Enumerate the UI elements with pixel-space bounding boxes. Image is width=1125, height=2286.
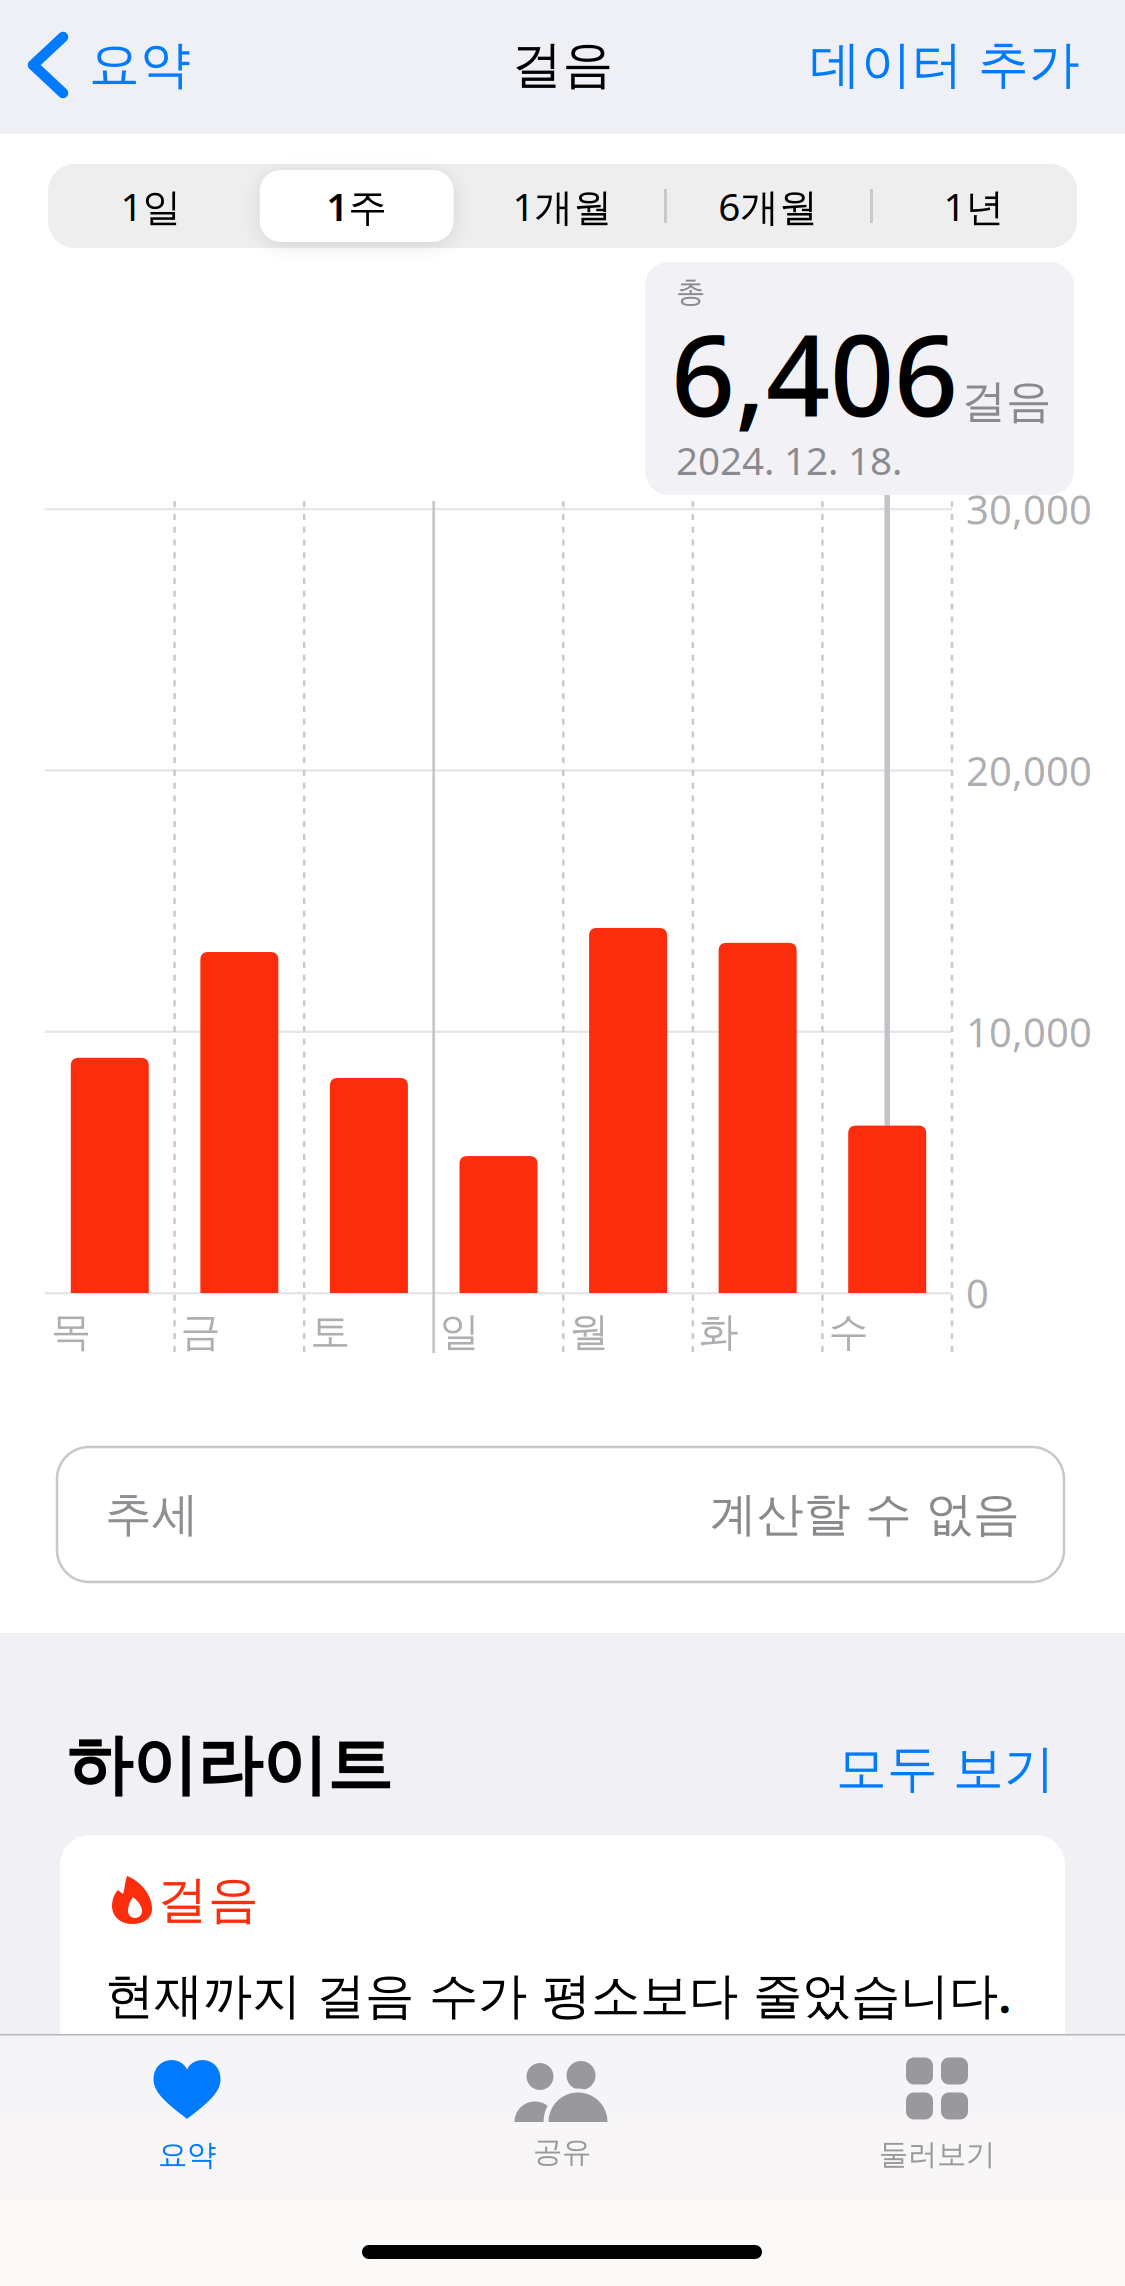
button[interactable]: 요약: [0, 2034, 200, 2146]
staticText: 걸음: [961, 373, 1051, 429]
staticText: 6개월: [718, 180, 818, 232]
staticText: 총: [676, 274, 705, 310]
staticText: 1년: [944, 180, 1005, 232]
button[interactable]: 둘러보기: [0, 2034, 200, 2148]
staticText: 1개월: [512, 180, 612, 232]
staticText: 모두 보기: [836, 1738, 1055, 1800]
button[interactable]: 1일: [48, 164, 254, 248]
button[interactable]: Back: [0, 0, 260, 58]
staticText: 하이라이트: [67, 1725, 392, 1806]
button[interactable]: 6개월: [48, 164, 254, 248]
staticText: 1주: [326, 180, 387, 232]
staticText: 계산할 수 없음: [710, 1486, 1020, 1543]
button[interactable]: 1개월: [48, 164, 254, 248]
button[interactable]: 공유: [0, 2034, 200, 2148]
staticText: 30,000: [966, 482, 1092, 536]
staticText: 둘러보기: [879, 2136, 995, 2172]
staticText: 현재까지 걸음 수가 평소보다 줄었습니다.: [105, 1961, 1012, 2027]
button[interactable]: 걸음: [60, 1835, 1065, 2255]
staticText: 요약: [158, 2137, 216, 2173]
staticText: 요약: [89, 34, 191, 96]
button[interactable]: 1주: [48, 164, 254, 248]
staticText: 금: [181, 1307, 221, 1356]
staticText: 1일: [120, 180, 181, 232]
staticText: 걸음: [157, 1869, 259, 1931]
button[interactable]: 1년: [48, 164, 254, 248]
staticText: 토: [310, 1307, 350, 1356]
staticText: 공유: [533, 2134, 591, 2170]
staticText: 월: [569, 1307, 609, 1356]
staticText: 수: [828, 1307, 868, 1356]
staticText: 0: [966, 1266, 989, 1319]
staticText: 일: [440, 1307, 480, 1356]
staticText: 20,000: [966, 744, 1092, 797]
staticText: 화: [699, 1307, 739, 1356]
staticText: 2024. 12. 18.: [676, 434, 902, 486]
staticText: 추세: [105, 1486, 199, 1543]
button[interactable]: 데이터 추가: [0, 0, 400, 58]
staticText: 목: [51, 1307, 91, 1356]
staticText: 10,000: [966, 1005, 1092, 1058]
staticText: 데이터 추가: [810, 34, 1080, 96]
staticText: 6,406: [671, 299, 958, 447]
staticText: 걸음: [511, 34, 613, 96]
